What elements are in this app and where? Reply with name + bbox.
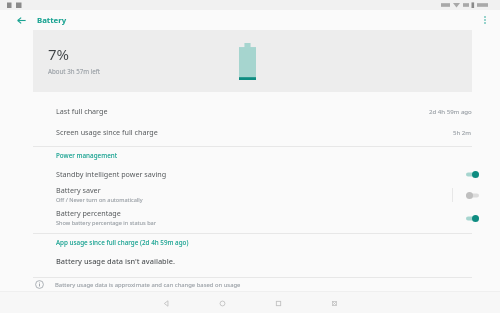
staticText: About 3h 57m left [48, 67, 101, 75]
button[interactable]: Battery saver [0, 183, 500, 206]
button[interactable]: Back [157, 294, 175, 312]
button[interactable]: Recent apps [269, 294, 287, 312]
staticText: Battery percentage [56, 208, 121, 218]
button[interactable]: Battery percentage [0, 206, 500, 229]
button[interactable]: 7% [33, 30, 472, 92]
staticText: Battery [37, 15, 67, 26]
staticText: Standby intelligent power saving [56, 169, 167, 179]
staticText: App usage since full charge (2d 4h 59m a… [56, 238, 189, 247]
button[interactable]: Battery saver, off [461, 188, 483, 202]
button[interactable]: Screenshot [325, 294, 343, 312]
button[interactable]: Last full charge [0, 100, 500, 121]
staticText: 7% [48, 44, 70, 64]
button[interactable]: Standby intelligent power saving [0, 164, 500, 183]
staticText: Last full charge [56, 106, 108, 116]
button[interactable]: Screen usage since full charge [0, 121, 500, 142]
staticText: 5h 2m [453, 128, 472, 136]
button[interactable]: Back [13, 12, 29, 28]
staticText: Show battery percentage in status bar [56, 219, 157, 227]
button[interactable]: Battery percentage, on [461, 211, 483, 225]
button[interactable]: Home [213, 294, 231, 312]
button[interactable]: More options [477, 12, 493, 28]
staticText: Battery saver [56, 185, 101, 195]
staticText: Power management [56, 151, 118, 160]
staticText: Battery usage data is approximate and ca… [55, 281, 241, 289]
staticText: Screen usage since full charge [56, 127, 158, 137]
staticText: Off / Never turn on automatically [56, 196, 143, 204]
button[interactable]: Standby intelligent power saving, on [461, 167, 483, 181]
staticText: Battery usage data isn't available. [56, 256, 175, 266]
button[interactable]: Battery usage data isn't available. [0, 251, 500, 271]
staticText: 2d 4h 59m ago [429, 107, 472, 115]
